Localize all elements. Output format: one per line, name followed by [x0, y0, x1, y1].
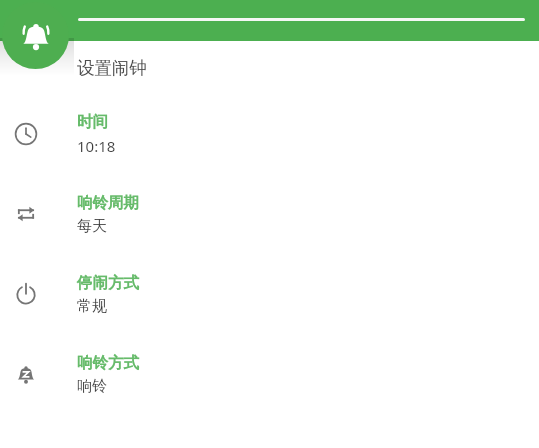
staticText: 常规	[77, 297, 107, 316]
staticText: 设置闹钟	[77, 57, 147, 79]
staticText: 响铃	[77, 377, 107, 396]
button[interactable]: Repeat	[0, 174, 539, 254]
other: Repeat	[0, 174, 52, 254]
other: Time	[0, 94, 52, 174]
button[interactable]: Stop mode	[0, 254, 539, 334]
other: Stop mode	[0, 254, 52, 334]
staticText: 10:18	[77, 136, 116, 156]
staticText: 时间	[77, 112, 108, 132]
button[interactable]: Ring mode	[0, 334, 539, 414]
other: Ring mode	[0, 334, 52, 414]
staticText: 响铃方式	[77, 353, 139, 373]
staticText: 每天	[77, 217, 107, 236]
staticText: 响铃周期	[77, 193, 139, 213]
button[interactable]: Time	[0, 94, 539, 174]
button[interactable]: Alarm	[2, 2, 69, 69]
staticText: 停闹方式	[77, 273, 139, 293]
